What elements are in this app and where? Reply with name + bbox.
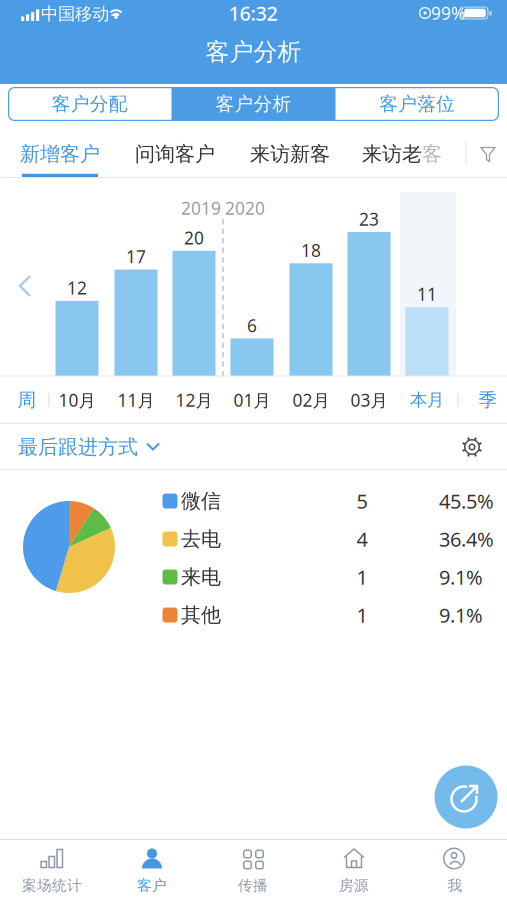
staticText: 99% (431, 1, 465, 24)
staticText: 微信 (181, 489, 221, 513)
button[interactable]: 传播 (208, 842, 298, 898)
button[interactable]: 筛选 (0, 132, 507, 178)
staticText: 1 (356, 564, 367, 590)
staticText: 17 (126, 245, 146, 268)
staticText: 2019 (181, 196, 221, 219)
staticText: 客户分析 (205, 37, 301, 67)
staticText: 问询客户 (135, 142, 215, 166)
staticText: 02月 (292, 388, 329, 411)
button[interactable]: 上一页 (19, 275, 31, 297)
staticText: 我 (447, 876, 462, 894)
staticText: 周 (17, 388, 36, 411)
staticText: 客 (422, 142, 442, 166)
button[interactable]: 设置 (0, 424, 507, 470)
button[interactable]: 新增客户 (0, 132, 507, 178)
button[interactable]: 问询客户 (0, 132, 507, 178)
staticText: 来访新客 (250, 142, 330, 166)
staticText: 9.1% (439, 564, 483, 590)
button[interactable]: 客户 (107, 842, 197, 898)
staticText: 传播 (238, 876, 268, 894)
staticText: 案场统计 (22, 876, 82, 894)
staticText: 11 (417, 283, 437, 306)
staticText: 6 (247, 314, 257, 337)
staticText: 客户分析 (215, 92, 291, 115)
staticText: 01月 (233, 388, 270, 411)
staticText: 5 (356, 488, 367, 514)
staticText: 9.1% (439, 602, 483, 628)
staticText: 客户 (137, 876, 167, 894)
staticText: 2020 (225, 196, 265, 219)
staticText: 45.5% (439, 488, 494, 514)
button[interactable]: 来访老 (0, 132, 507, 178)
staticText: 16:32 (228, 0, 277, 26)
button[interactable]: 客户分析 (171, 87, 335, 121)
button[interactable]: 客户分配 (8, 87, 171, 121)
button[interactable]: 我 (410, 842, 500, 898)
staticText: 季 (478, 388, 497, 411)
button[interactable]: 案场统计 (7, 842, 97, 898)
staticText: 36.4% (439, 526, 494, 552)
button[interactable]: 客户落位 (335, 87, 499, 121)
staticText: 18 (301, 239, 321, 262)
staticText: 23 (359, 207, 379, 230)
button[interactable]: 最后跟进方式 (0, 435, 159, 459)
staticText: 来电 (181, 565, 221, 589)
staticText: 20 (184, 226, 204, 249)
staticText: 最后跟进方式 (18, 435, 138, 459)
staticText: 4 (356, 526, 367, 552)
staticText: 新增客户 (20, 142, 100, 166)
button[interactable]: 刷新 (434, 765, 497, 828)
button[interactable]: 来访新客 (0, 132, 507, 178)
staticText: 12月 (175, 388, 212, 411)
staticText: 11月 (117, 388, 154, 411)
button[interactable]: 房源 (309, 842, 399, 898)
staticText: 本月 (410, 389, 444, 411)
staticText: 12 (67, 276, 87, 299)
staticText: 03月 (350, 388, 387, 411)
staticText: 房源 (339, 876, 369, 894)
staticText: 其他 (181, 603, 221, 627)
staticText: 来访老 (362, 142, 422, 166)
staticText: 中国移动 (41, 3, 109, 25)
staticText: 客户落位 (379, 92, 455, 115)
staticText: 1 (356, 602, 367, 628)
staticText: 客户分配 (52, 92, 128, 115)
staticText: 去电 (181, 527, 221, 551)
staticText: 10月 (58, 388, 95, 411)
